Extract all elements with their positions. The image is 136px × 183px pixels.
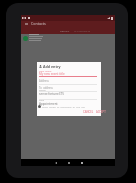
button[interactable]: Back [53, 159, 58, 166]
staticText: My new event title [39, 72, 65, 76]
button[interactable]: ALL CONTACTS [73, 30, 91, 33]
staticText: Send invite to everyone in the list [42, 105, 85, 108]
staticText: Appointment [39, 102, 58, 106]
staticText: Item name [39, 69, 52, 72]
staticText: Contacts [31, 21, 46, 26]
staticText: To address [39, 86, 53, 90]
button[interactable]: GROUPS [59, 30, 71, 33]
button[interactable]: Recent apps [79, 159, 84, 166]
button[interactable]: Contact avatar [23, 36, 28, 41]
button[interactable]: Home [66, 159, 71, 166]
staticText: Add entry [43, 64, 61, 69]
staticText: ALL CONTACTS [74, 30, 90, 33]
button[interactable]: ACCEPT [96, 110, 106, 114]
staticText: GROUPS [60, 30, 70, 33]
staticText: Server [39, 89, 46, 92]
staticText: Type [39, 99, 44, 102]
staticText: server.fortune375 [39, 92, 64, 96]
staticText: ACCEPT [96, 110, 106, 114]
button[interactable]: Send invite to everyone in the list [38, 105, 85, 108]
staticText: Address [39, 79, 49, 83]
button[interactable]: Navigation menu [24, 21, 29, 26]
button[interactable]: CANCEL [83, 110, 94, 114]
staticText: CANCEL [83, 110, 94, 114]
